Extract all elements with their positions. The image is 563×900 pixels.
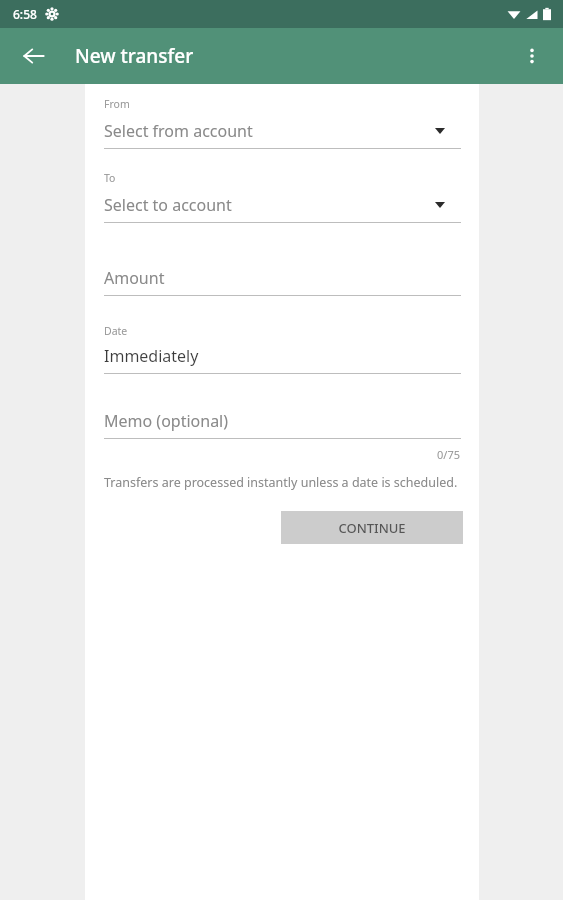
staticText: Select from account xyxy=(104,120,253,142)
staticText: Memo (optional) xyxy=(104,410,229,432)
staticText: 6:58 xyxy=(13,6,37,22)
staticText: To xyxy=(104,171,116,185)
staticText: Transfers are processed instantly unless… xyxy=(104,474,458,491)
button[interactable]: More options xyxy=(509,33,555,79)
staticText: Date xyxy=(104,324,128,338)
staticText: From xyxy=(104,97,130,111)
button[interactable]: Select to account xyxy=(104,194,461,223)
button[interactable]: Select from account xyxy=(104,120,461,149)
staticText: Select to account xyxy=(104,194,232,216)
staticText: Amount xyxy=(104,267,165,289)
staticText: 0/75 xyxy=(437,447,460,462)
button[interactable]: Back xyxy=(10,32,58,80)
button[interactable]: CONTINUE xyxy=(281,511,463,544)
button[interactable]: Amount xyxy=(104,267,461,296)
staticText: New transfer xyxy=(75,43,194,69)
staticText: CONTINUE xyxy=(338,519,406,537)
button[interactable]: Immediately xyxy=(104,345,461,374)
staticText: Immediately xyxy=(104,345,199,367)
button[interactable]: Memo (optional) xyxy=(104,410,461,439)
